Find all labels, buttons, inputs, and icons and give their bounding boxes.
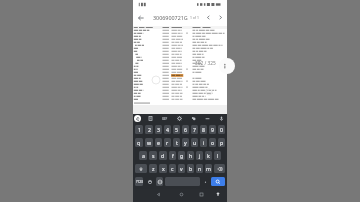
button[interactable]: t [173, 138, 180, 147]
staticText: g [180, 152, 184, 159]
button[interactable]: o [209, 138, 216, 147]
staticText: 2 [148, 126, 151, 133]
staticText: 302 / 325 [195, 60, 216, 67]
staticText: n [198, 165, 202, 172]
button[interactable]: ?123 [135, 177, 143, 186]
button[interactable]: Change language [156, 177, 163, 186]
button[interactable]: More options [219, 58, 235, 74]
button[interactable]: c [169, 164, 176, 173]
staticText: r [166, 139, 169, 146]
staticText: 3 [157, 126, 160, 133]
staticText: f [172, 152, 174, 159]
button[interactable]: Home [176, 189, 186, 199]
button[interactable]: d [159, 151, 167, 160]
staticText: l [217, 152, 219, 159]
button[interactable]: y [182, 138, 189, 147]
button[interactable]: Shift [135, 164, 147, 173]
button[interactable]: Voice input [217, 114, 226, 123]
staticText: 3006900721G [153, 14, 188, 21]
staticText: i [203, 139, 205, 146]
staticText: x [162, 165, 165, 172]
button[interactable]: u [191, 138, 198, 147]
button[interactable]: Back [134, 11, 147, 24]
button[interactable]: 4 [164, 125, 171, 134]
staticText: 7 [193, 126, 196, 133]
button[interactable]: q [135, 138, 143, 147]
button[interactable]: Settings [175, 114, 184, 123]
button[interactable]: x [159, 164, 167, 173]
button[interactable]: b [187, 164, 194, 173]
staticText: 1 [138, 126, 141, 133]
button[interactable]: Google search [134, 115, 141, 122]
staticText: 4 [166, 126, 169, 133]
button[interactable]: i [200, 138, 207, 147]
button[interactable]: Stickers [189, 114, 198, 123]
button[interactable]: Emoji [144, 175, 155, 188]
button[interactable]: Clipboard [146, 114, 155, 123]
button[interactable]: p [218, 138, 225, 147]
button[interactable]: Back [153, 189, 163, 199]
button[interactable]: a [139, 151, 147, 160]
button[interactable]: Backspace [214, 164, 225, 173]
staticText: d [161, 152, 165, 159]
staticText: k [207, 152, 210, 159]
button[interactable]: r [164, 138, 171, 147]
button[interactable]: Next result [214, 11, 226, 23]
staticText: m [206, 165, 211, 172]
button[interactable]: 0 [218, 125, 225, 134]
button[interactable]: n [196, 164, 203, 173]
staticText: p [220, 139, 224, 146]
staticText: 0 [220, 126, 223, 133]
button[interactable]: 2 [145, 125, 153, 134]
staticText: q [137, 139, 141, 146]
staticText: b [189, 165, 193, 172]
staticText: v [180, 165, 183, 172]
button[interactable]: 8 [200, 125, 207, 134]
button[interactable]: 1 [135, 125, 143, 134]
staticText: 9 [211, 126, 214, 133]
staticText: h [189, 152, 193, 159]
button[interactable]: 6 [182, 125, 189, 134]
button[interactable]: z [149, 164, 157, 173]
button[interactable]: h [187, 151, 194, 160]
button[interactable]: f [169, 151, 176, 160]
staticText: 6 [184, 126, 187, 133]
staticText: 1 of 1 [190, 15, 199, 20]
staticText: y [184, 139, 187, 146]
staticText: o [211, 139, 215, 146]
button[interactable]: 3 [155, 125, 162, 134]
button[interactable]: Search [211, 177, 225, 186]
button[interactable]: w [145, 138, 153, 147]
button[interactable]: m [205, 164, 212, 173]
staticText: u [193, 139, 197, 146]
staticText: ?123 [136, 180, 143, 184]
button[interactable]: l [214, 151, 221, 160]
staticText: 5 [175, 126, 178, 133]
staticText: e [157, 139, 160, 146]
button[interactable]: Recent apps [196, 189, 206, 199]
button[interactable]: j [196, 151, 203, 160]
staticText: c [171, 165, 174, 172]
staticText: 8 [202, 126, 205, 133]
staticText: t [176, 139, 178, 146]
button[interactable]: Previous result [202, 11, 214, 23]
button[interactable]: 7 [191, 125, 198, 134]
button[interactable]: s [149, 151, 157, 160]
button[interactable]: Period [201, 175, 210, 188]
staticText: z [152, 165, 155, 172]
button[interactable]: GIF [160, 114, 169, 123]
staticText: j [199, 152, 201, 159]
button[interactable]: e [155, 138, 162, 147]
staticText: w [147, 139, 152, 146]
staticText: GIF [162, 117, 168, 121]
button[interactable]: k [205, 151, 212, 160]
button[interactable]: Hide keyboard [213, 189, 223, 199]
button[interactable]: 9 [209, 125, 216, 134]
button[interactable]: 5 [173, 125, 180, 134]
button[interactable]: v [178, 164, 185, 173]
button[interactable]: More options [203, 114, 212, 123]
staticText: s [152, 152, 155, 159]
staticText: a [142, 152, 145, 159]
button[interactable]: g [178, 151, 185, 160]
